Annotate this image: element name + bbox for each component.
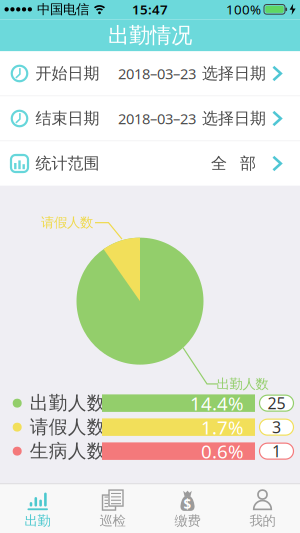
- staticText: 缴费: [174, 513, 200, 529]
- staticText: 14.4%: [190, 391, 244, 416]
- staticText: 2018–03–23: [118, 64, 196, 83]
- staticText: 全: [211, 154, 227, 173]
- staticText: 我的: [249, 513, 275, 529]
- staticText: 1: [272, 440, 281, 462]
- staticText: 25: [267, 392, 285, 414]
- staticText: 出勤情况: [108, 22, 192, 48]
- button[interactable]: $: [150, 484, 225, 533]
- staticText: 出勤: [24, 513, 50, 529]
- staticText: 部: [240, 154, 256, 173]
- staticText: 选择日期: [202, 109, 266, 128]
- staticText: 15:47: [132, 0, 168, 18]
- staticText: 请假人数: [41, 214, 93, 231]
- staticText: 选择日期: [202, 64, 266, 83]
- staticText: 请假人数: [30, 416, 106, 439]
- staticText: 巡检: [99, 513, 125, 529]
- button[interactable]: 开始日期: [0, 51, 300, 96]
- button[interactable]: 出勤: [0, 484, 75, 533]
- staticText: 出勤人数: [216, 376, 268, 392]
- staticText: 出勤人数: [30, 392, 106, 415]
- staticText: 100%: [226, 0, 261, 18]
- staticText: 生病人数: [30, 440, 106, 463]
- staticText: 1.7%: [201, 415, 244, 440]
- staticText: 中国电信: [37, 1, 89, 18]
- button[interactable]: 巡检: [75, 484, 150, 533]
- staticText: 2018–03–23: [118, 109, 196, 128]
- staticText: 开始日期: [35, 64, 99, 83]
- staticText: 统计范围: [35, 154, 99, 173]
- staticText: $: [183, 495, 191, 513]
- button[interactable]: 我的: [225, 484, 300, 533]
- staticText: 3: [272, 416, 281, 438]
- staticText: 0.6%: [201, 439, 244, 464]
- staticText: 结束日期: [35, 109, 99, 128]
- button[interactable]: 结束日期: [0, 96, 300, 141]
- button[interactable]: 统计范围: [0, 141, 300, 186]
